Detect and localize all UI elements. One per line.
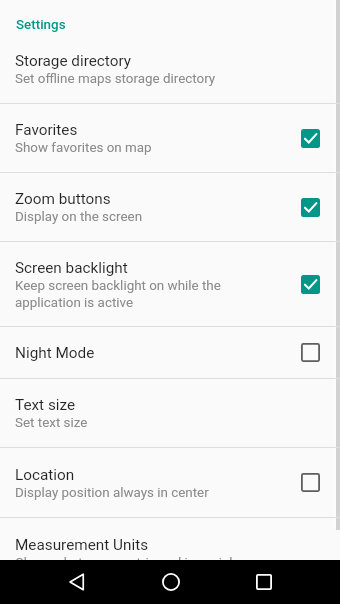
staticText: Screen backlight xyxy=(15,258,128,277)
staticText: Settings xyxy=(16,17,66,33)
button[interactable]: Back xyxy=(46,560,106,604)
staticText: Keep screen backlight on while the appli… xyxy=(15,277,221,311)
staticText: Location xyxy=(15,465,75,484)
staticText: Night Mode xyxy=(15,343,95,362)
staticText: Favorites xyxy=(15,120,78,139)
button[interactable]: Measurement Units xyxy=(0,518,340,587)
staticText: Zoom buttons xyxy=(15,189,111,208)
staticText: Show favorites on map xyxy=(15,139,152,156)
staticText: Set offline maps storage directory xyxy=(15,70,216,87)
staticText: Display position always in center xyxy=(15,484,209,501)
button[interactable]: Screen backlight xyxy=(0,242,340,326)
staticText: Set text size xyxy=(15,414,88,431)
button[interactable]: Text size xyxy=(0,379,340,447)
button[interactable]: Recent apps xyxy=(234,560,294,604)
staticText: Measurement Units xyxy=(15,535,149,554)
button[interactable]: Storage directory xyxy=(0,34,340,103)
button[interactable]: Home xyxy=(141,560,201,604)
staticText: Storage directory xyxy=(15,51,132,70)
staticText: Text size xyxy=(15,395,76,414)
staticText: Display on the screen xyxy=(15,208,143,225)
staticText: Change between metric and imperial xyxy=(15,554,233,571)
button[interactable]: Favorites xyxy=(0,104,340,172)
button[interactable]: Night Mode xyxy=(0,327,340,378)
button[interactable]: Zoom buttons xyxy=(0,173,340,241)
button[interactable]: Location xyxy=(0,448,340,517)
